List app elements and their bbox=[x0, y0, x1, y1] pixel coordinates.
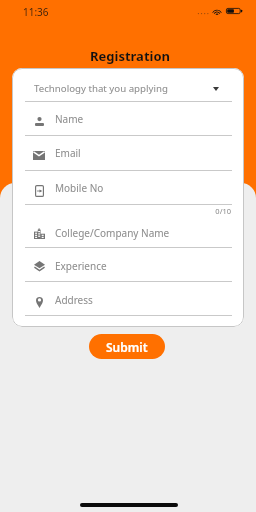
button[interactable]: Technology that you applying bbox=[12, 78, 244, 99]
button[interactable]: Experience bbox=[12, 247, 244, 281]
staticText: Mobile No bbox=[55, 181, 104, 195]
staticText: 0/10 bbox=[191, 206, 231, 216]
staticText: Technology that you applying bbox=[34, 82, 168, 95]
staticText: Submit bbox=[106, 339, 148, 355]
staticText: College/Company Name bbox=[55, 226, 170, 240]
button[interactable]: Mobile No bbox=[12, 170, 244, 205]
staticText: Name bbox=[55, 112, 84, 126]
staticText: Experience bbox=[55, 259, 107, 273]
staticText: Email bbox=[55, 146, 81, 160]
staticText: 11:36 bbox=[23, 5, 49, 19]
button[interactable]: Submit bbox=[89, 334, 165, 359]
button[interactable]: Address bbox=[12, 281, 244, 315]
button[interactable]: Name bbox=[12, 101, 244, 136]
staticText: Address bbox=[55, 293, 93, 307]
button[interactable]: College/Company Name bbox=[12, 208, 244, 247]
staticText: Registration bbox=[2, 47, 256, 65]
button[interactable]: Email bbox=[12, 135, 244, 170]
